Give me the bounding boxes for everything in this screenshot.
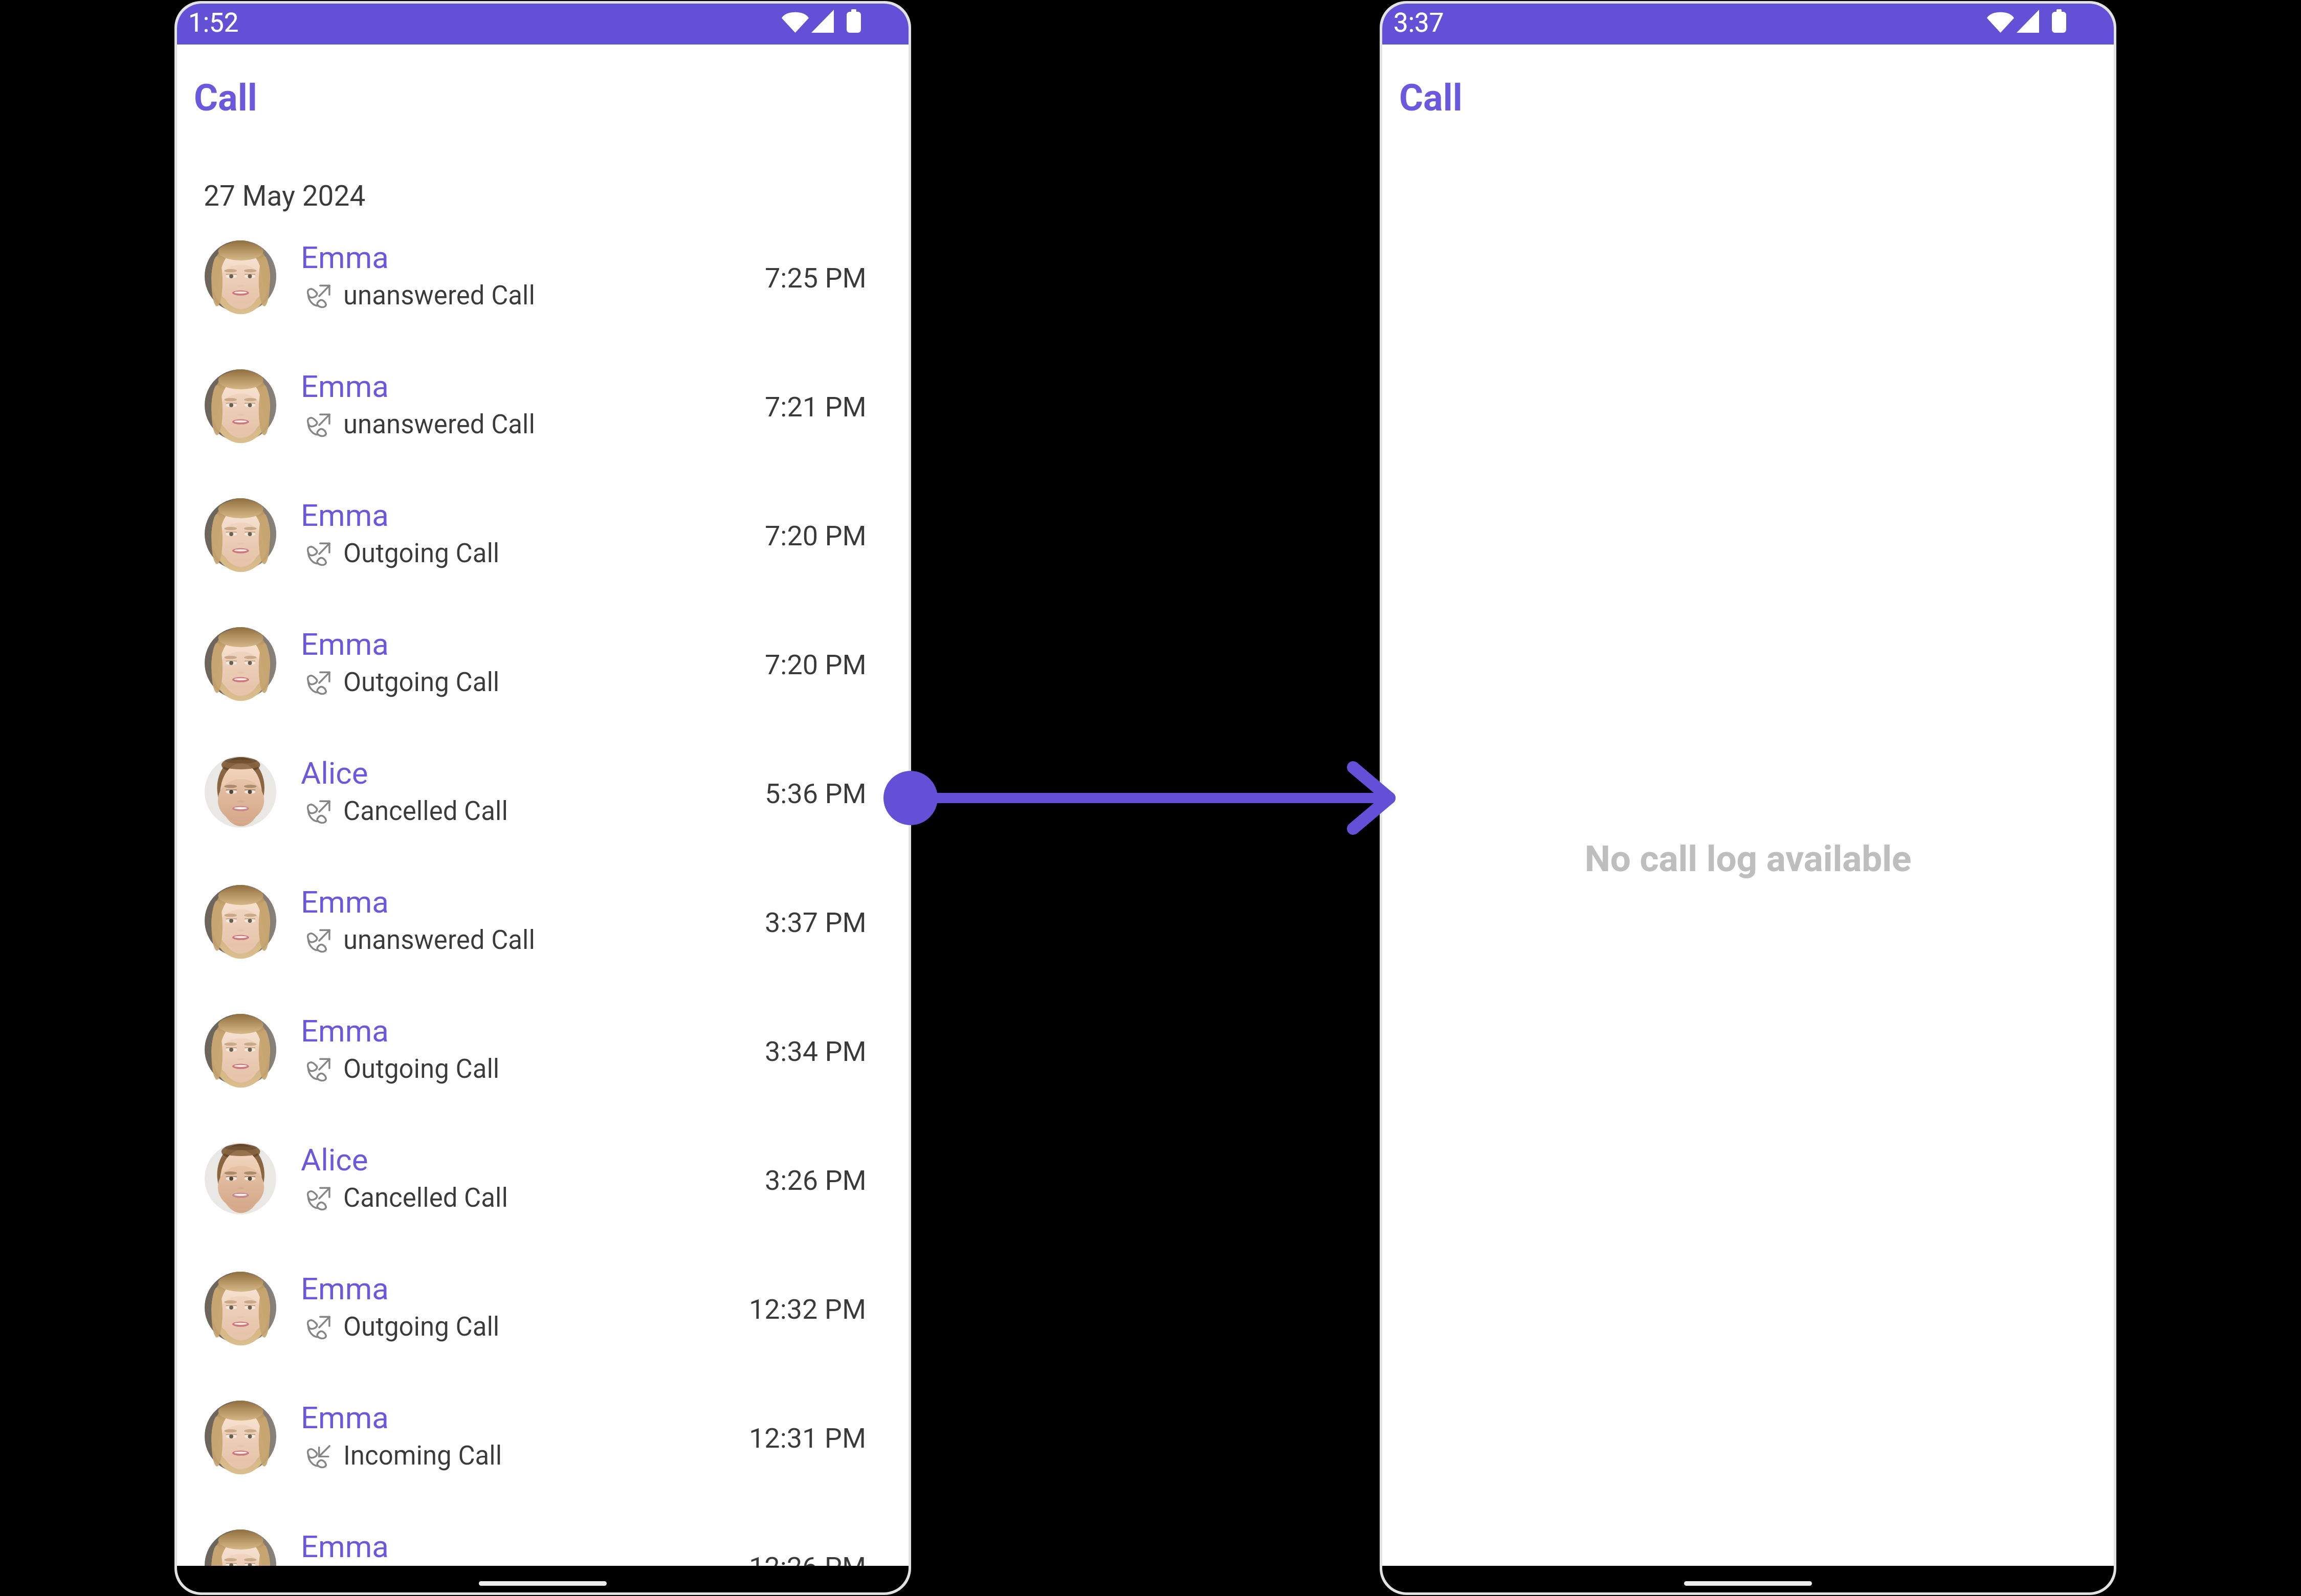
- staticText: Incoming Call: [343, 1440, 502, 1471]
- button[interactable]: Alice: [177, 1135, 909, 1263]
- staticText: 3:37 PM: [765, 906, 867, 939]
- button[interactable]: Emma: [177, 490, 909, 619]
- button[interactable]: Home: [479, 1581, 607, 1586]
- button[interactable]: Emma: [177, 1392, 909, 1521]
- staticText: 7:25 PM: [765, 262, 867, 294]
- staticText: 12:31 PM: [749, 1422, 867, 1454]
- staticText: Emma: [301, 368, 389, 404]
- staticText: Cancelled Call: [343, 796, 508, 827]
- staticText: 3:34 PM: [765, 1035, 867, 1068]
- staticText: No call log available: [1382, 837, 2114, 880]
- button[interactable]: Emma: [177, 1521, 909, 1592]
- button[interactable]: Emma: [177, 361, 909, 490]
- staticText: Outgoing Call: [343, 538, 500, 569]
- other: Battery: [847, 9, 861, 33]
- staticText: 12:26 PM: [749, 1551, 867, 1583]
- button[interactable]: Emma: [177, 1263, 909, 1392]
- staticText: 1:52: [188, 8, 239, 38]
- staticText: Call: [1399, 76, 1463, 119]
- staticText: 12:32 PM: [749, 1293, 867, 1325]
- staticText: 5:36 PM: [765, 778, 867, 810]
- staticText: Outgoing Call: [343, 1569, 500, 1592]
- button[interactable]: Emma: [177, 619, 909, 748]
- staticText: Emma: [301, 1528, 389, 1564]
- staticText: 7:20 PM: [765, 520, 867, 552]
- staticText: Alice: [301, 755, 368, 791]
- staticText: Outgoing Call: [343, 1054, 500, 1084]
- other: Wi-Fi signal: [782, 10, 809, 33]
- staticText: 3:26 PM: [765, 1164, 867, 1196]
- staticText: unanswered Call: [343, 409, 535, 440]
- other: Mobile signal: [811, 10, 834, 33]
- other: Mobile signal: [2017, 10, 2039, 33]
- staticText: Call: [194, 76, 257, 119]
- button[interactable]: Emma: [177, 877, 909, 1006]
- staticText: unanswered Call: [343, 280, 535, 311]
- staticText: Alice: [301, 1142, 368, 1178]
- staticText: Emma: [301, 1013, 389, 1049]
- staticText: Emma: [301, 1271, 389, 1306]
- staticText: 27 May 2024: [204, 180, 366, 212]
- staticText: Cancelled Call: [343, 1183, 508, 1213]
- staticText: 7:21 PM: [765, 391, 867, 423]
- staticText: Outgoing Call: [343, 667, 500, 698]
- staticText: Outgoing Call: [343, 1312, 500, 1342]
- staticText: Emma: [301, 239, 389, 275]
- button[interactable]: Emma: [177, 1006, 909, 1135]
- button[interactable]: Home: [1684, 1581, 1812, 1586]
- other: Wi-Fi signal: [1987, 10, 2014, 33]
- staticText: unanswered Call: [343, 925, 535, 956]
- staticText: Emma: [301, 1400, 389, 1435]
- other: Battery: [2052, 9, 2066, 33]
- staticText: Emma: [301, 626, 389, 662]
- staticText: 7:20 PM: [765, 649, 867, 681]
- button[interactable]: Alice: [177, 748, 909, 877]
- button[interactable]: Emma: [177, 232, 909, 361]
- staticText: 3:37: [1393, 8, 1444, 38]
- staticText: Emma: [301, 884, 389, 920]
- staticText: Emma: [301, 497, 389, 533]
